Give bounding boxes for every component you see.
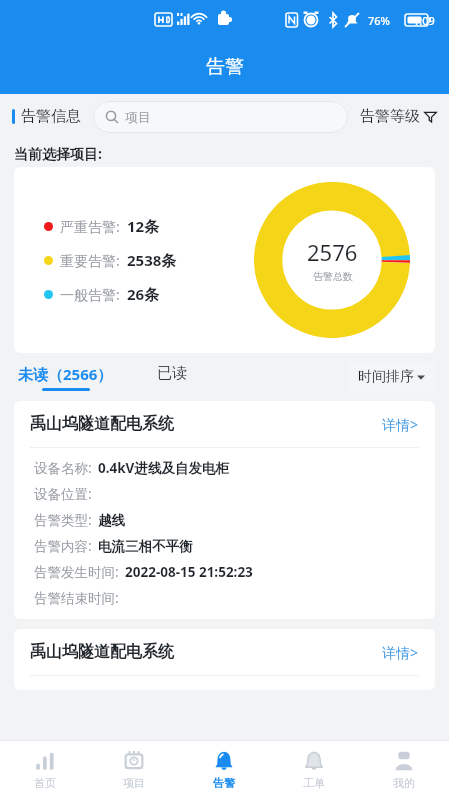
button[interactable]: 未读（2566） [18, 364, 113, 391]
staticText: 工单 [303, 776, 325, 790]
staticText: 告警总数 [313, 270, 353, 283]
staticText: 设备名称: [34, 459, 92, 477]
staticText: 未读（2566） [18, 364, 113, 384]
staticText: 已读 [157, 364, 187, 383]
other: 工单 [303, 750, 325, 772]
staticText: 12条 [127, 216, 160, 236]
staticText: 告警 [213, 776, 235, 790]
staticText: 禹山坞隧道配电系统 [30, 414, 174, 434]
staticText: 项目 [123, 776, 145, 790]
staticText: 0.4kV进线及自发电柜 [98, 459, 229, 477]
staticText: 告警等级 [360, 107, 420, 126]
button[interactable]: 工单 [269, 741, 359, 799]
staticText: 重要告警: [60, 251, 120, 270]
staticText: 2576 [307, 237, 358, 267]
button[interactable]: 首页 [0, 741, 89, 799]
staticText: 告警类型: [34, 511, 92, 529]
staticText: 告警信息 [21, 107, 81, 126]
button[interactable]: 详情> [382, 643, 419, 662]
staticText: 时间排序 [358, 368, 414, 386]
staticText: 电流三相不平衡 [98, 538, 193, 555]
staticText: 2538条 [127, 250, 177, 270]
staticText: 告警发生时间: [34, 563, 119, 581]
staticText: 禹山坞隧道配电系统 [30, 642, 174, 662]
other: 告警 [213, 750, 235, 772]
button[interactable]: 项目 [89, 741, 179, 799]
staticText: 当前选择项目: [14, 144, 102, 163]
staticText: 告警 [206, 55, 244, 79]
staticText: 项目 [125, 109, 151, 125]
staticText: 严重告警: [60, 217, 120, 236]
button[interactable]: 时间排序 [348, 362, 435, 392]
button[interactable]: 禹山坞隧道配电系统 [14, 629, 435, 690]
staticText: 76% [368, 13, 390, 28]
button[interactable]: 严重告警: [14, 167, 435, 353]
staticText: 告警内容: [34, 537, 92, 555]
button[interactable]: 项目 [93, 101, 348, 133]
staticText: 26条 [127, 284, 160, 304]
button[interactable]: 详情> [382, 415, 419, 434]
button[interactable]: 告警 [179, 741, 269, 799]
button[interactable]: 已读 [157, 364, 187, 390]
button[interactable]: 我的 [359, 741, 449, 799]
button[interactable]: 告警等级 [360, 107, 437, 126]
staticText: 设备位置: [34, 485, 92, 503]
button[interactable]: 禹山坞隧道配电系统 [14, 401, 435, 619]
button[interactable]: 告警信息 [12, 107, 81, 126]
staticText: 一般告警: [60, 285, 120, 304]
staticText: 越线 [98, 512, 125, 529]
staticText: 我的 [393, 776, 415, 790]
staticText: 1:09 [413, 13, 435, 28]
staticText: 告警结束时间: [34, 589, 119, 607]
staticText: 2022-08-15 21:52:23 [125, 563, 253, 581]
staticText: 首页 [34, 776, 56, 790]
